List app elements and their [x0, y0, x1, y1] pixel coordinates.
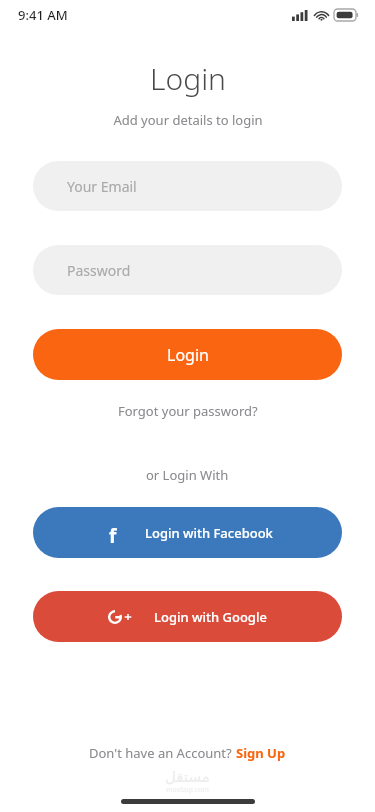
staticText: Login [150, 58, 226, 99]
staticText: or Login With [146, 466, 229, 484]
staticText: Don't have an Account? [89, 744, 236, 762]
button[interactable]: Google Plus [33, 591, 342, 642]
staticText: Forgot your password? [118, 402, 258, 420]
staticText: mostaql.com [166, 785, 209, 795]
staticText: f [109, 523, 117, 543]
staticText: Your Email [67, 177, 137, 196]
other: Google Plus [108, 610, 132, 624]
button[interactable]: Don't have an Account? [89, 744, 286, 762]
button[interactable]: Your Email [33, 161, 342, 211]
staticText: Password [67, 261, 131, 280]
staticText: 9:41 AM [18, 6, 68, 24]
button[interactable]: Password [33, 245, 342, 295]
other: Facebook [103, 523, 123, 543]
staticText: Add your details to login [113, 111, 263, 129]
staticText: Login with Facebook [145, 524, 273, 542]
staticText: Login [167, 344, 209, 366]
button[interactable]: Login [33, 329, 342, 380]
staticText: مستقل [165, 768, 210, 785]
button[interactable]: Forgot your password? [118, 402, 258, 420]
staticText: Login with Google [154, 608, 267, 626]
staticText: Sign Up [236, 744, 286, 762]
button[interactable]: Facebook [33, 507, 342, 558]
